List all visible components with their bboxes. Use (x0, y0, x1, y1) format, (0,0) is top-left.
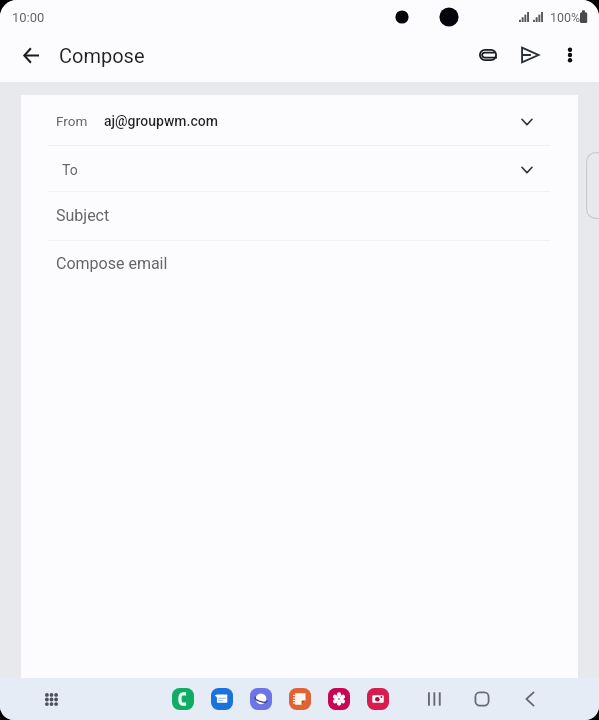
button[interactable]: From (21, 95, 578, 145)
button[interactable]: Recent apps (419, 683, 451, 715)
staticText: 100% (550, 10, 581, 25)
button[interactable]: More options (548, 33, 592, 77)
staticText: Compose email (56, 254, 168, 273)
staticText: Subject (56, 206, 110, 225)
button[interactable]: Camera (367, 688, 389, 710)
button[interactable]: Edge panel handle (586, 152, 599, 219)
staticText: Compose (59, 44, 145, 67)
staticText: To (62, 162, 78, 178)
staticText: 10:00 (12, 10, 45, 25)
button[interactable]: Gallery (328, 688, 350, 710)
button[interactable]: Send (508, 33, 552, 77)
button[interactable]: Notes (289, 688, 311, 710)
button[interactable]: Back (514, 683, 546, 715)
button[interactable]: Messages (211, 688, 233, 710)
staticText: From (56, 113, 88, 129)
button[interactable]: All apps (37, 685, 65, 713)
staticText: aj@groupwm.com (104, 113, 218, 129)
button[interactable]: To (21, 145, 578, 190)
button[interactable]: Compose email (21, 240, 578, 678)
button[interactable]: Internet (250, 688, 272, 710)
button[interactable]: Subject (21, 191, 578, 240)
button[interactable]: Navigate up (9, 33, 53, 77)
button[interactable]: Phone (172, 688, 194, 710)
button[interactable]: Home (466, 683, 498, 715)
button[interactable]: Attach file (466, 33, 510, 77)
